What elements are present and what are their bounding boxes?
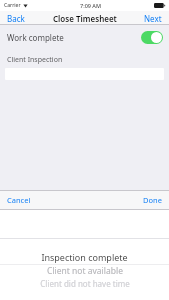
staticText: Client Inspection (7, 55, 63, 65)
staticText: Client not available (47, 265, 123, 277)
staticText: Cancel (7, 195, 31, 205)
button[interactable]: Client did not have time (0, 277, 169, 289)
staticText: Back (7, 13, 25, 24)
staticText: Inspection complete (41, 251, 128, 263)
button[interactable]: Next (137, 11, 169, 25)
staticText: Carrier (4, 2, 21, 9)
button[interactable]: Cancel (0, 190, 38, 210)
button[interactable]: Work complete (0, 28, 169, 46)
button[interactable]: Client not available (0, 265, 169, 277)
staticText: Next (144, 13, 162, 24)
button[interactable]: Work complete toggle (141, 31, 163, 44)
button[interactable]: Inspection complete (0, 250, 169, 264)
staticText: Close Timesheet (53, 13, 117, 24)
staticText: Client did not have time (40, 278, 130, 289)
staticText: 7:09 AM (80, 2, 102, 9)
staticText: Work complete (7, 32, 64, 43)
staticText: Done (143, 195, 162, 205)
button[interactable]: Done (136, 190, 169, 210)
button[interactable]: Back (0, 11, 32, 25)
